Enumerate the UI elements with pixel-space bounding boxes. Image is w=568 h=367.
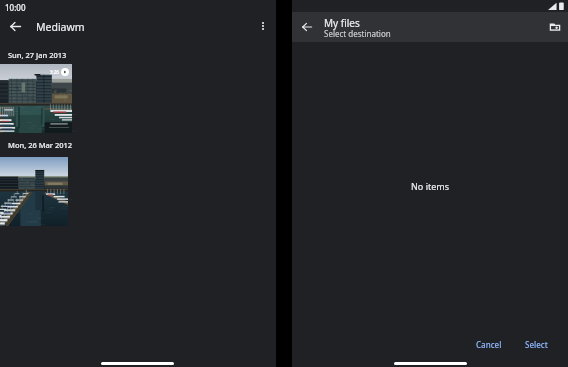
- staticText: My files: [324, 16, 360, 30]
- button[interactable]: Cancel: [468, 334, 510, 355]
- staticText: 3:26: [50, 69, 59, 75]
- staticText: No items: [411, 180, 449, 192]
- button[interactable]: Photo, 26 Mar 2012: [0, 157, 68, 226]
- button[interactable]: Create new folder: [542, 14, 568, 40]
- staticText: Mediawm: [36, 20, 85, 34]
- button[interactable]: Navigate up: [2, 13, 28, 39]
- button[interactable]: Video, 27 Jan 2013, 3:26: [0, 64, 72, 133]
- button[interactable]: Navigate up: [294, 14, 320, 40]
- staticText: Cancel: [476, 339, 502, 350]
- staticText: Sun, 27 Jan 2013: [8, 50, 67, 60]
- staticText: Select destination: [324, 28, 391, 39]
- staticText: 10:00: [5, 2, 26, 13]
- staticText: Select: [525, 339, 548, 350]
- staticText: Mon, 26 Mar 2012: [8, 140, 73, 150]
- button[interactable]: More options: [252, 15, 274, 37]
- button[interactable]: Select: [517, 334, 556, 355]
